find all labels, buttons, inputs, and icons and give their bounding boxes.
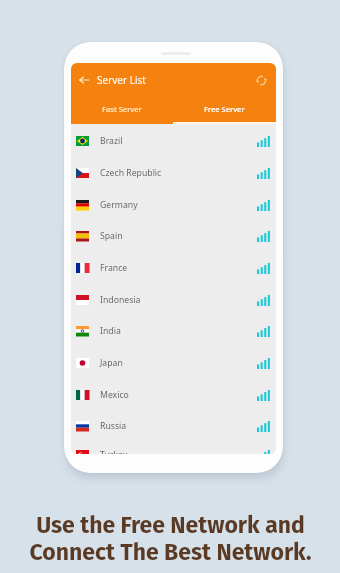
staticText: Mexico bbox=[100, 389, 129, 401]
button[interactable]: Turkey bbox=[71, 439, 276, 454]
button[interactable]: India bbox=[71, 315, 276, 347]
staticText: Free Server bbox=[204, 104, 245, 114]
staticText: Turkey bbox=[100, 449, 128, 454]
staticText: Connect The Best Network. bbox=[29, 538, 312, 566]
button[interactable]: Back bbox=[77, 73, 91, 87]
staticText: Server List bbox=[97, 73, 146, 87]
button[interactable]: Czech Republic bbox=[71, 157, 276, 189]
staticText: Spain bbox=[100, 230, 123, 242]
staticText: Czech Republic bbox=[100, 167, 162, 179]
staticText: Russia bbox=[100, 420, 127, 432]
button[interactable]: Spain bbox=[71, 220, 276, 252]
staticText: India bbox=[100, 325, 121, 337]
staticText: Germany bbox=[100, 199, 138, 211]
button[interactable]: Free Server bbox=[173, 96, 276, 122]
button[interactable]: Mexico bbox=[71, 379, 276, 411]
button[interactable]: Japan bbox=[71, 347, 276, 379]
button[interactable]: Indonesia bbox=[71, 284, 276, 316]
staticText: Fast Server bbox=[102, 104, 142, 114]
button[interactable]: Germany bbox=[71, 189, 276, 221]
staticText: Japan bbox=[100, 357, 123, 369]
staticText: France bbox=[100, 262, 128, 274]
staticText: Use the Free Network and bbox=[36, 511, 305, 539]
staticText: Indonesia bbox=[100, 294, 141, 306]
button[interactable]: Brazil bbox=[71, 125, 276, 157]
staticText: Brazil bbox=[100, 135, 123, 147]
button[interactable]: Russia bbox=[71, 410, 276, 442]
button[interactable]: Fast Server bbox=[71, 96, 173, 122]
button[interactable]: France bbox=[71, 252, 276, 284]
button[interactable]: Refresh bbox=[254, 73, 268, 87]
